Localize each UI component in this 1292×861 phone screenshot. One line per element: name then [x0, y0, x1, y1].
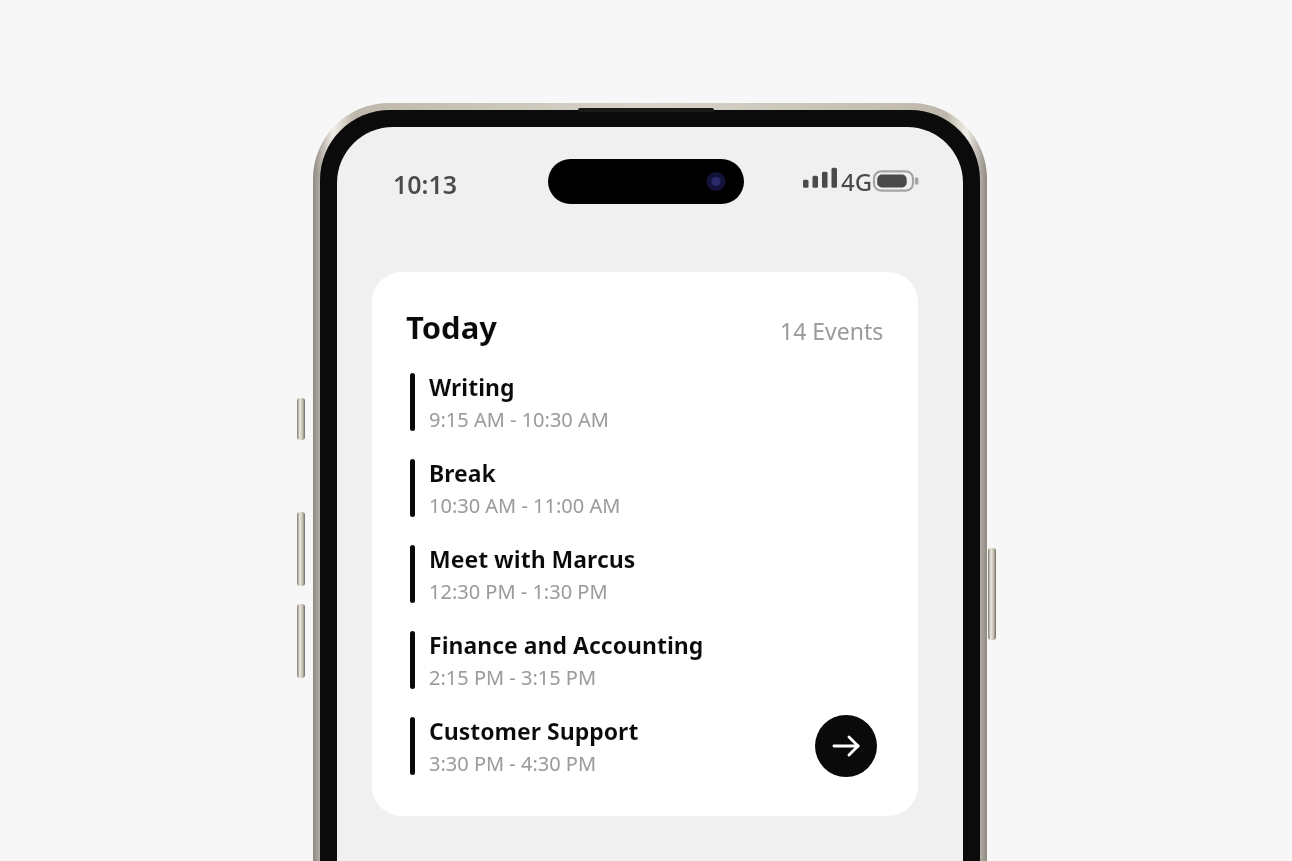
other: Volume down — [297, 604, 305, 678]
staticText: Break — [429, 457, 496, 488]
staticText: 12:30 PM - 1:30 PM — [429, 578, 608, 605]
other: Power — [988, 548, 996, 640]
staticText: 14 Events — [780, 315, 884, 346]
button[interactable]: Meet with Marcus — [410, 543, 880, 629]
staticText: 10:30 AM - 11:00 AM — [429, 492, 621, 519]
button[interactable]: Next — [815, 715, 877, 777]
button[interactable]: Break — [410, 457, 880, 543]
button[interactable]: Writing — [410, 371, 880, 457]
staticText: 10:13 — [393, 167, 458, 201]
button[interactable]: Customer Support — [410, 715, 880, 801]
other: Volume up — [297, 512, 305, 586]
staticText: Customer Support — [429, 715, 639, 746]
other: Action button — [297, 398, 305, 440]
staticText: Finance and Accounting — [429, 629, 704, 660]
staticText: Today — [406, 306, 497, 348]
staticText: 9:15 AM - 10:30 AM — [429, 406, 609, 433]
staticText: 2:15 PM - 3:15 PM — [429, 664, 597, 691]
staticText: Writing — [429, 371, 515, 402]
button[interactable]: Finance and Accounting — [410, 629, 880, 715]
staticText: 3:30 PM - 4:30 PM — [429, 750, 597, 777]
staticText: 4G — [841, 165, 873, 198]
staticText: Meet with Marcus — [429, 543, 636, 574]
